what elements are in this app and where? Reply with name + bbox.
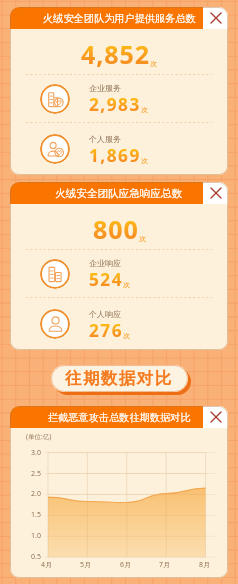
staticText: 7月 (159, 560, 171, 570)
staticText: 800 (93, 212, 139, 246)
staticText: 4月 (41, 560, 53, 570)
staticText: 3.0 (31, 448, 41, 458)
staticText: 5月 (80, 560, 92, 570)
staticText: 276 (89, 319, 123, 342)
staticText: 次 (150, 59, 157, 68)
staticText: 企业服务 (89, 83, 121, 93)
staticText: 企业响应 (89, 258, 121, 268)
staticText: 8月 (199, 560, 211, 570)
staticText: 拦截恶意攻击总数往期数据对比 (48, 411, 191, 424)
staticText: 往期数据对比 (65, 368, 173, 389)
staticText: 1,869 (89, 144, 141, 167)
staticText: 次 (141, 105, 148, 114)
staticText: 火绒安全团队应急响应总数 (55, 187, 183, 200)
staticText: 2.5 (31, 469, 41, 479)
staticText: 个人服务 (89, 134, 121, 144)
button[interactable]: 关闭 (203, 406, 228, 428)
staticText: 2.0 (31, 489, 41, 499)
button[interactable]: 关闭 (203, 7, 228, 29)
staticText: 个人响应 (89, 309, 121, 319)
staticText: 4,852 (81, 37, 150, 71)
staticText: 6月 (120, 560, 132, 570)
staticText: 1.5 (31, 510, 41, 520)
staticText: 次 (141, 156, 148, 165)
staticText: 0.5 (31, 552, 41, 562)
staticText: (单位:亿) (26, 432, 52, 441)
staticText: 524 (89, 268, 123, 291)
staticText: 1.0 (31, 531, 41, 541)
button[interactable]: 关闭 (203, 182, 228, 204)
staticText: 次 (123, 331, 130, 340)
staticText: 次 (123, 280, 130, 289)
staticText: 火绒安全团队为用户提供服务总数 (43, 12, 196, 25)
staticText: 2,983 (89, 93, 141, 116)
button[interactable]: 往期数据对比 (51, 365, 188, 392)
staticText: 次 (139, 234, 146, 243)
